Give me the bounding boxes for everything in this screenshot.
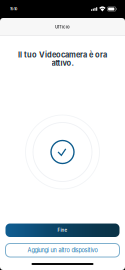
- button[interactable]: Fine: [5, 223, 119, 237]
- staticText: Il tuo Videocamera è ora: [18, 50, 107, 59]
- staticText: 15:10: [10, 7, 17, 11]
- staticText: attivo.: [51, 58, 73, 67]
- button[interactable]: Aggiungi un altro dispositivo: [5, 243, 119, 257]
- staticText: Ufficio: [55, 24, 70, 30]
- staticText: Aggiungi un altro dispositivo: [27, 247, 97, 253]
- staticText: Fine: [57, 228, 67, 233]
